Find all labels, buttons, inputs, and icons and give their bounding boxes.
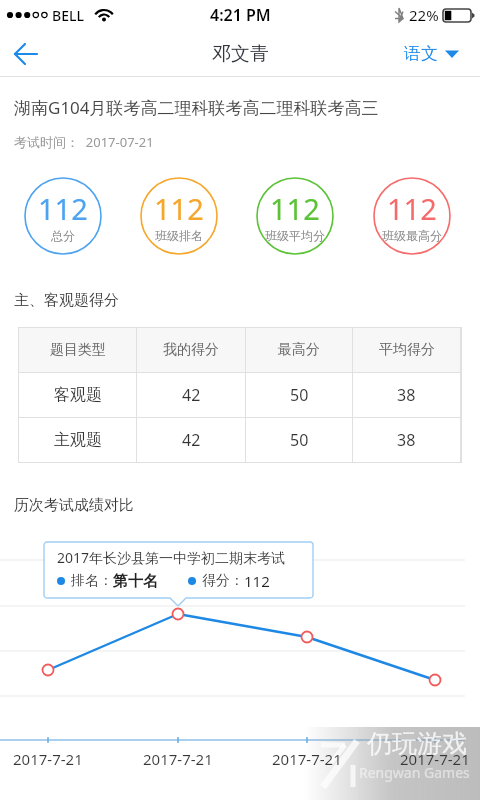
staticText: 4:21 PM <box>210 4 271 26</box>
staticText: 2017年长沙县第一中学初二期末考试 <box>57 548 286 567</box>
staticText: Rengwan Games <box>359 763 470 782</box>
staticText: 我的得分 <box>163 341 219 359</box>
staticText: 题目类型 <box>50 341 106 359</box>
staticText: BELL <box>52 6 84 25</box>
staticText: 38 <box>397 429 416 451</box>
staticText: 主、客观题得分 <box>14 291 119 310</box>
staticText: 班级排名 <box>155 228 203 243</box>
staticText: 50 <box>290 384 309 406</box>
staticText: 112 <box>244 571 270 591</box>
staticText: 平均得分 <box>379 341 435 359</box>
button[interactable] <box>0 30 50 77</box>
staticText: 112 <box>387 189 437 228</box>
staticText: 主观题 <box>54 430 102 450</box>
staticText: 排名： <box>71 572 113 590</box>
button[interactable]: 语文 <box>404 43 459 64</box>
staticText: 班级最高分 <box>382 228 442 243</box>
staticText: 42 <box>182 384 201 406</box>
staticText: 22% <box>409 5 439 25</box>
staticText: 2017-7-21 <box>13 749 83 769</box>
staticText: 2017-7-21 <box>143 749 213 769</box>
staticText: 得分： <box>202 572 244 590</box>
staticText: 2017-7-21 <box>272 749 342 769</box>
staticText: 班级平均分 <box>265 228 325 243</box>
staticText: 50 <box>290 429 309 451</box>
staticText: 112 <box>38 189 88 228</box>
staticText: 邓文青 <box>212 42 269 66</box>
staticText: 考试时间： 2017-07-21 <box>14 133 154 151</box>
staticText: 42 <box>182 429 201 451</box>
staticText: 湖南G104月联考高二理科联考高二理科联考高三 <box>14 96 379 119</box>
staticText: 2017-7-21 <box>400 749 470 769</box>
staticText: 历次考试成绩对比 <box>14 496 134 515</box>
staticText: 仍玩游戏 <box>367 728 467 759</box>
staticText: 最高分 <box>278 341 320 359</box>
staticText: 语文 <box>404 43 438 64</box>
staticText: 总分 <box>51 228 75 243</box>
staticText: 112 <box>270 189 320 228</box>
staticText: 112 <box>154 189 204 228</box>
staticText: 客观题 <box>54 385 102 405</box>
staticText: 38 <box>397 384 416 406</box>
staticText: 第十名 <box>113 572 158 591</box>
